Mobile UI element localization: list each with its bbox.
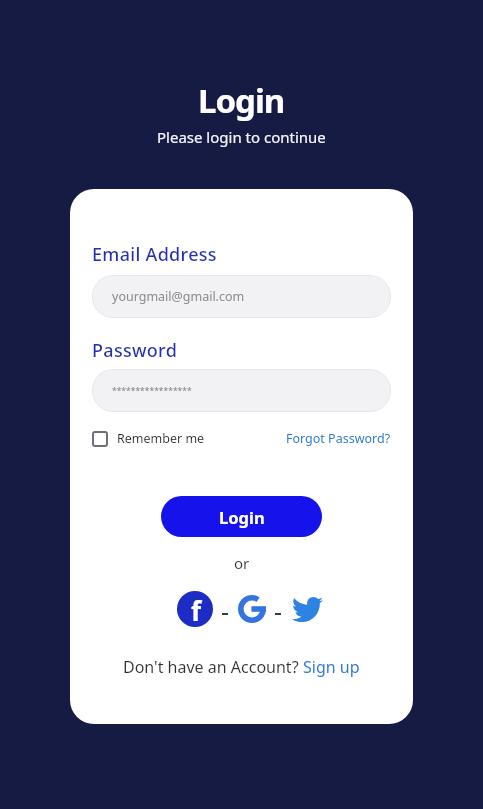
staticText: yourgmail@gmail.com xyxy=(112,288,245,305)
staticText: Don't have an Account? xyxy=(123,656,303,678)
staticText: Forgot Password? xyxy=(286,430,391,447)
staticText: f xyxy=(191,593,202,627)
staticText: Please login to continue xyxy=(157,127,326,147)
staticText: Password xyxy=(92,338,178,363)
staticText: Remember me xyxy=(117,430,205,447)
staticText: or xyxy=(234,553,250,573)
staticText: Login xyxy=(219,506,265,528)
staticText: ***************** xyxy=(112,385,192,397)
staticText: Sign up xyxy=(303,656,360,678)
staticText: Login xyxy=(198,78,285,123)
staticText: Email Address xyxy=(92,242,217,267)
